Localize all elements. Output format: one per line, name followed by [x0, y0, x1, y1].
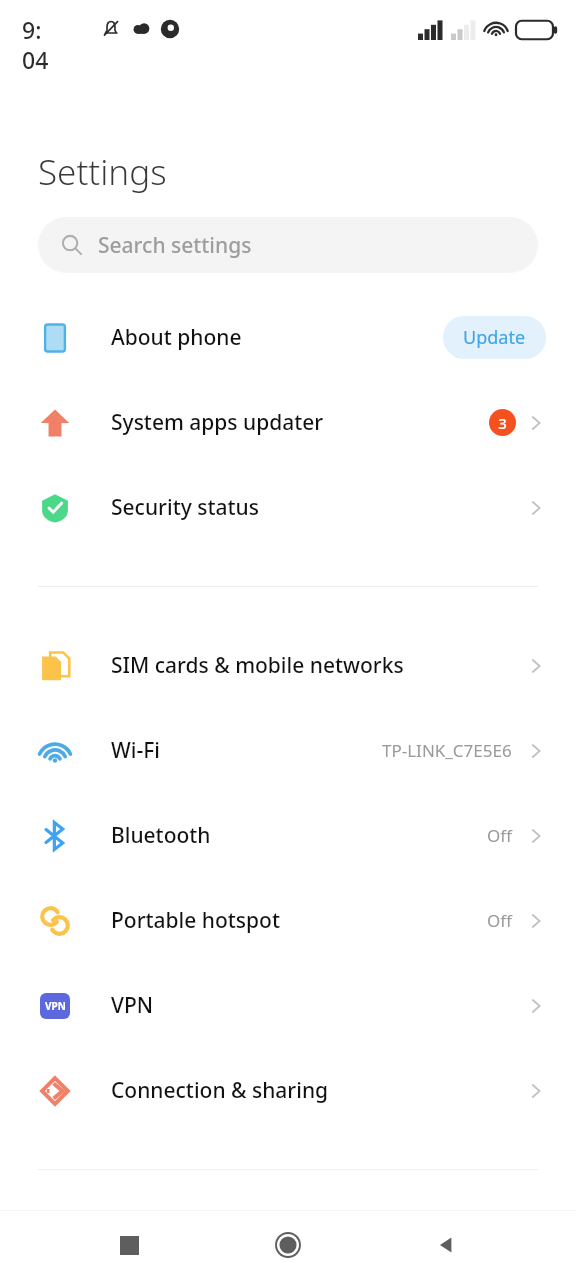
staticText: Connection & sharing [111, 1076, 526, 1105]
staticText: Off [487, 909, 512, 932]
button[interactable]: Bluetooth [0, 793, 576, 878]
button[interactable]: VPN [0, 963, 576, 1048]
staticText: About phone [111, 323, 443, 352]
staticText: VPN [45, 999, 66, 1013]
button[interactable]: Home [258, 1215, 318, 1275]
staticText: Off [487, 824, 512, 847]
button[interactable]: Security status [0, 465, 576, 550]
staticText: SIM cards & mobile networks [111, 651, 526, 680]
staticText: Bluetooth [111, 821, 487, 850]
staticText: Search settings [98, 231, 252, 260]
staticText: VPN [111, 991, 526, 1020]
button[interactable]: About phone [0, 295, 576, 380]
button[interactable]: Search settings [38, 217, 538, 273]
staticText: Settings [38, 148, 167, 196]
button[interactable]: System apps updater [0, 380, 576, 465]
staticText: System apps updater [111, 408, 489, 437]
staticText: 9: 04 [22, 14, 49, 75]
staticText: Update [463, 325, 526, 350]
button[interactable]: Back [417, 1215, 477, 1275]
staticText: TP-LINK_C7E5E6 [382, 739, 512, 762]
button[interactable]: Recent apps [99, 1215, 159, 1275]
staticText: 3 [498, 413, 507, 433]
staticText: Security status [111, 493, 526, 522]
button[interactable]: Wi-Fi [0, 708, 576, 793]
button[interactable]: Portable hotspot [0, 878, 576, 963]
staticText: Wi-Fi [111, 736, 382, 765]
button[interactable]: Connection & sharing [0, 1048, 576, 1133]
staticText: Portable hotspot [111, 906, 487, 935]
button[interactable]: Update [443, 316, 546, 359]
button[interactable]: SIM cards & mobile networks [0, 623, 576, 708]
